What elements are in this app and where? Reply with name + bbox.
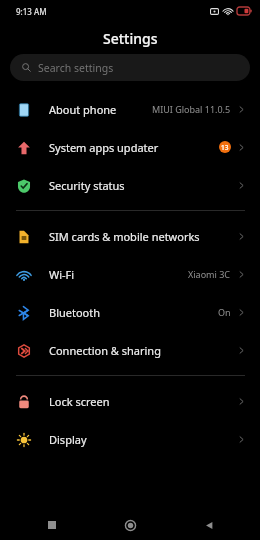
staticText: About phone — [49, 102, 117, 117]
staticText: Security status — [49, 178, 125, 193]
staticText: Bluetooth — [49, 305, 101, 320]
staticText: Wi-Fi — [49, 267, 75, 282]
button[interactable]: System apps updater — [0, 128, 260, 166]
staticText: System apps updater — [49, 140, 159, 155]
button[interactable]: About phone — [0, 90, 260, 128]
button[interactable]: Display — [0, 420, 260, 458]
staticText: 13 — [221, 143, 229, 152]
staticText: MIUI Global 11.0.5 — [152, 103, 231, 115]
button[interactable]: Wi-Fi — [0, 255, 260, 293]
staticText: Xiaomi 3C — [188, 268, 231, 280]
button[interactable]: Back — [182, 510, 236, 540]
button[interactable]: Home — [103, 510, 157, 540]
staticText: On — [218, 306, 231, 318]
button[interactable]: SIM cards & mobile networks — [0, 217, 260, 255]
button[interactable]: Search settings — [10, 54, 250, 81]
button[interactable]: Security status — [0, 166, 260, 204]
staticText: Connection & sharing — [49, 343, 161, 358]
staticText: SIM cards & mobile networks — [49, 229, 200, 244]
staticText: Settings — [103, 29, 158, 48]
button[interactable]: Connection & sharing — [0, 331, 260, 369]
button[interactable]: Bluetooth — [0, 293, 260, 331]
staticText: Search settings — [38, 61, 114, 75]
button[interactable]: Lock screen — [0, 382, 260, 420]
button[interactable]: Recent apps — [25, 510, 79, 540]
staticText: Display — [49, 432, 87, 447]
staticText: 9:13 AM — [16, 6, 47, 17]
staticText: Lock screen — [49, 394, 110, 409]
